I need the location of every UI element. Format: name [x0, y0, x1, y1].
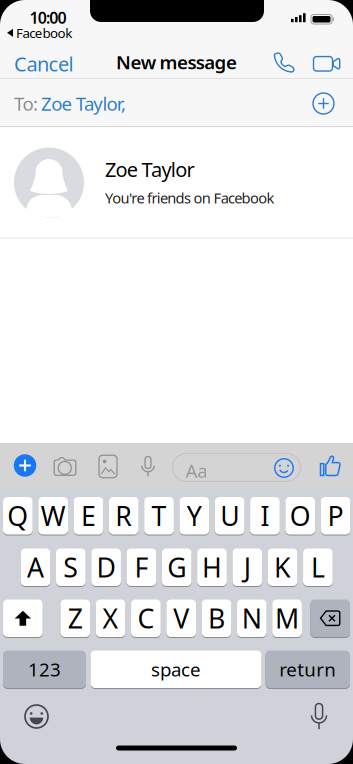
button[interactable]: M: [272, 599, 302, 637]
button[interactable]: J: [232, 548, 262, 586]
button[interactable]: Facebook: [7, 24, 72, 42]
button[interactable]: Emoji: [274, 458, 293, 477]
staticText: Zoe Taylor,: [41, 91, 126, 116]
staticText: K: [274, 549, 291, 585]
staticText: D: [97, 549, 116, 585]
staticText: G: [167, 549, 186, 585]
button[interactable]: Delete: [310, 599, 350, 637]
button[interactable]: X: [96, 599, 125, 637]
button[interactable]: Q: [3, 497, 33, 534]
staticText: R: [115, 498, 132, 533]
staticText: Zoe Taylor: [105, 156, 195, 183]
button[interactable]: L: [303, 548, 333, 586]
button[interactable]: S: [56, 548, 86, 586]
staticText: M: [275, 600, 299, 636]
staticText: Z: [68, 600, 83, 636]
button[interactable]: K: [268, 548, 297, 586]
staticText: You're friends on Facebook: [105, 188, 274, 207]
staticText: To:: [14, 91, 38, 116]
staticText: U: [220, 498, 239, 533]
button[interactable]: W: [38, 497, 68, 534]
button[interactable]: V: [166, 599, 196, 637]
staticText: O: [290, 498, 311, 533]
button[interactable]: O: [285, 497, 315, 534]
button[interactable]: Photo gallery: [99, 455, 117, 478]
button[interactable]: P: [321, 497, 350, 534]
button[interactable]: Zoe Taylor,: [41, 91, 126, 116]
staticText: Facebook: [16, 24, 72, 42]
button[interactable]: Cancel: [14, 50, 73, 77]
staticText: N: [242, 600, 262, 636]
button[interactable]: space: [90, 650, 261, 688]
staticText: B: [208, 600, 225, 636]
staticText: E: [81, 498, 96, 533]
staticText: Y: [187, 498, 202, 533]
staticText: F: [134, 549, 148, 585]
button[interactable]: H: [197, 548, 227, 586]
button[interactable]: Call: [272, 50, 295, 73]
button[interactable]: Zoe Taylor: [0, 127, 353, 237]
staticText: T: [151, 498, 166, 533]
button[interactable]: Y: [179, 497, 209, 534]
button[interactable]: 123: [3, 650, 86, 688]
button[interactable]: Aa: [172, 453, 300, 481]
button[interactable]: Dictation: [310, 703, 327, 730]
button[interactable]: return: [265, 650, 350, 688]
button[interactable]: Voice clip: [141, 456, 155, 477]
button[interactable]: D: [91, 548, 121, 586]
staticText: Q: [7, 498, 28, 533]
staticText: H: [202, 549, 222, 585]
staticText: 10:00: [30, 7, 66, 28]
button[interactable]: I: [250, 497, 280, 534]
staticText: V: [173, 600, 189, 636]
button[interactable]: Z: [60, 599, 90, 637]
staticText: space: [151, 657, 201, 682]
staticText: S: [63, 549, 78, 585]
staticText: Aa: [185, 458, 207, 483]
button[interactable]: Camera: [53, 456, 76, 476]
button[interactable]: Shift: [3, 599, 43, 637]
staticText: A: [27, 549, 44, 585]
button[interactable]: T: [144, 497, 174, 534]
button[interactable]: More actions: [13, 454, 36, 477]
staticText: I: [260, 498, 269, 533]
button[interactable]: B: [202, 599, 231, 637]
button[interactable]: U: [215, 497, 244, 534]
button[interactable]: A: [21, 548, 50, 586]
button[interactable]: R: [109, 497, 139, 534]
staticText: 123: [28, 657, 61, 682]
staticText: J: [244, 549, 251, 585]
staticText: return: [279, 657, 336, 682]
button[interactable]: Video call: [310, 53, 336, 71]
staticText: W: [41, 498, 66, 533]
button[interactable]: Emoji keyboard: [25, 705, 48, 728]
staticText: L: [311, 549, 325, 585]
button[interactable]: E: [74, 497, 103, 534]
staticText: New message: [116, 50, 237, 74]
button[interactable]: Add contact: [312, 92, 334, 114]
button[interactable]: F: [126, 548, 156, 586]
staticText: P: [328, 498, 344, 533]
button[interactable]: G: [162, 548, 191, 586]
button[interactable]: C: [131, 599, 161, 637]
staticText: C: [137, 600, 154, 636]
staticText: Cancel: [14, 50, 73, 77]
button[interactable]: N: [237, 599, 267, 637]
button[interactable]: Send a like: [319, 455, 341, 477]
staticText: X: [103, 600, 119, 636]
